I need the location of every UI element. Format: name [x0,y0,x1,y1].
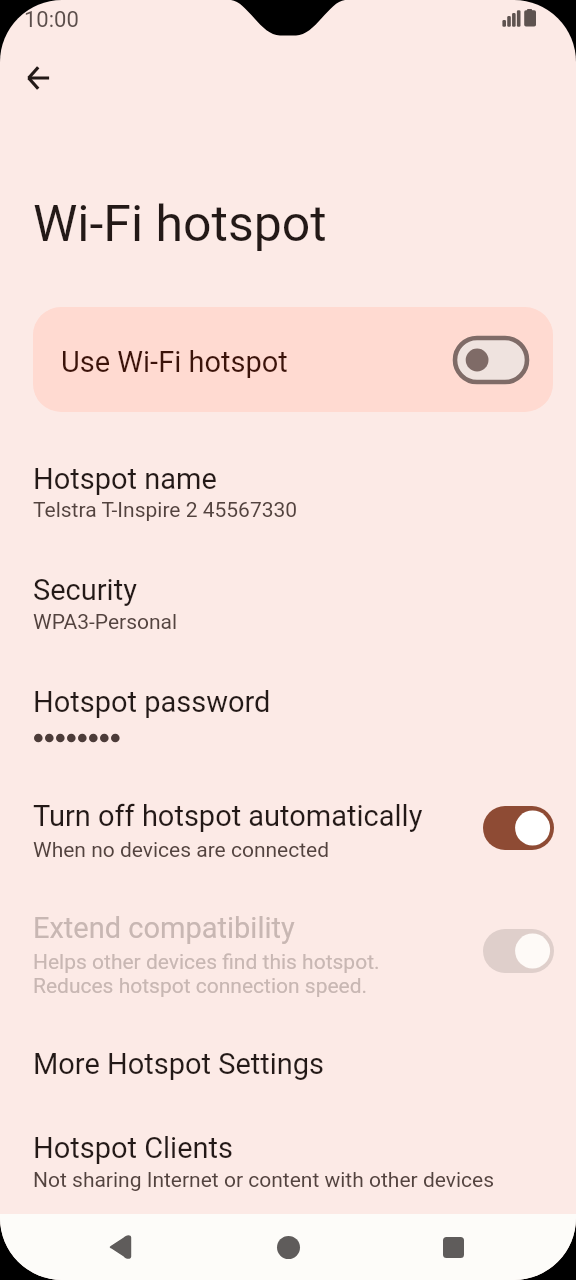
staticText: WPA3-Personal [33,610,178,635]
button[interactable]: Turn off hotspot automatically [0,778,576,868]
staticText: When no devices are connected [33,838,330,863]
staticText: Security [33,573,137,607]
staticText: Turn off hotspot automatically [33,799,423,833]
button[interactable]: Hotspot name [0,440,576,530]
button[interactable]: Extend compatibility [0,890,576,1002]
button[interactable]: Hotspot Clients [0,1110,576,1200]
staticText: More Hotspot Settings [33,1047,325,1081]
button[interactable]: Home [250,1219,326,1275]
staticText: Helps other devices find this hotspot. R… [33,950,380,998]
staticText: Hotspot name [33,462,217,496]
staticText: 10:00 [24,7,79,33]
staticText: Hotspot password [33,685,271,719]
button[interactable]: More Hotspot Settings [0,1026,576,1090]
staticText: Telstra T-Inspire 2 45567330 [33,498,298,523]
button[interactable]: Back [83,1219,159,1275]
button[interactable]: Back [10,50,66,106]
button[interactable]: Hotspot password [0,664,576,756]
button[interactable]: Use Wi-Fi hotspot [33,307,553,412]
button[interactable]: Security [0,552,576,642]
staticText: Wi-Fi hotspot [33,195,327,254]
button[interactable]: Recents [415,1219,491,1275]
staticText: Use Wi-Fi hotspot [61,345,288,379]
staticText: Hotspot Clients [33,1131,234,1165]
staticText: Not sharing Internet or content with oth… [33,1168,494,1193]
staticText: Extend compatibility [33,911,295,945]
